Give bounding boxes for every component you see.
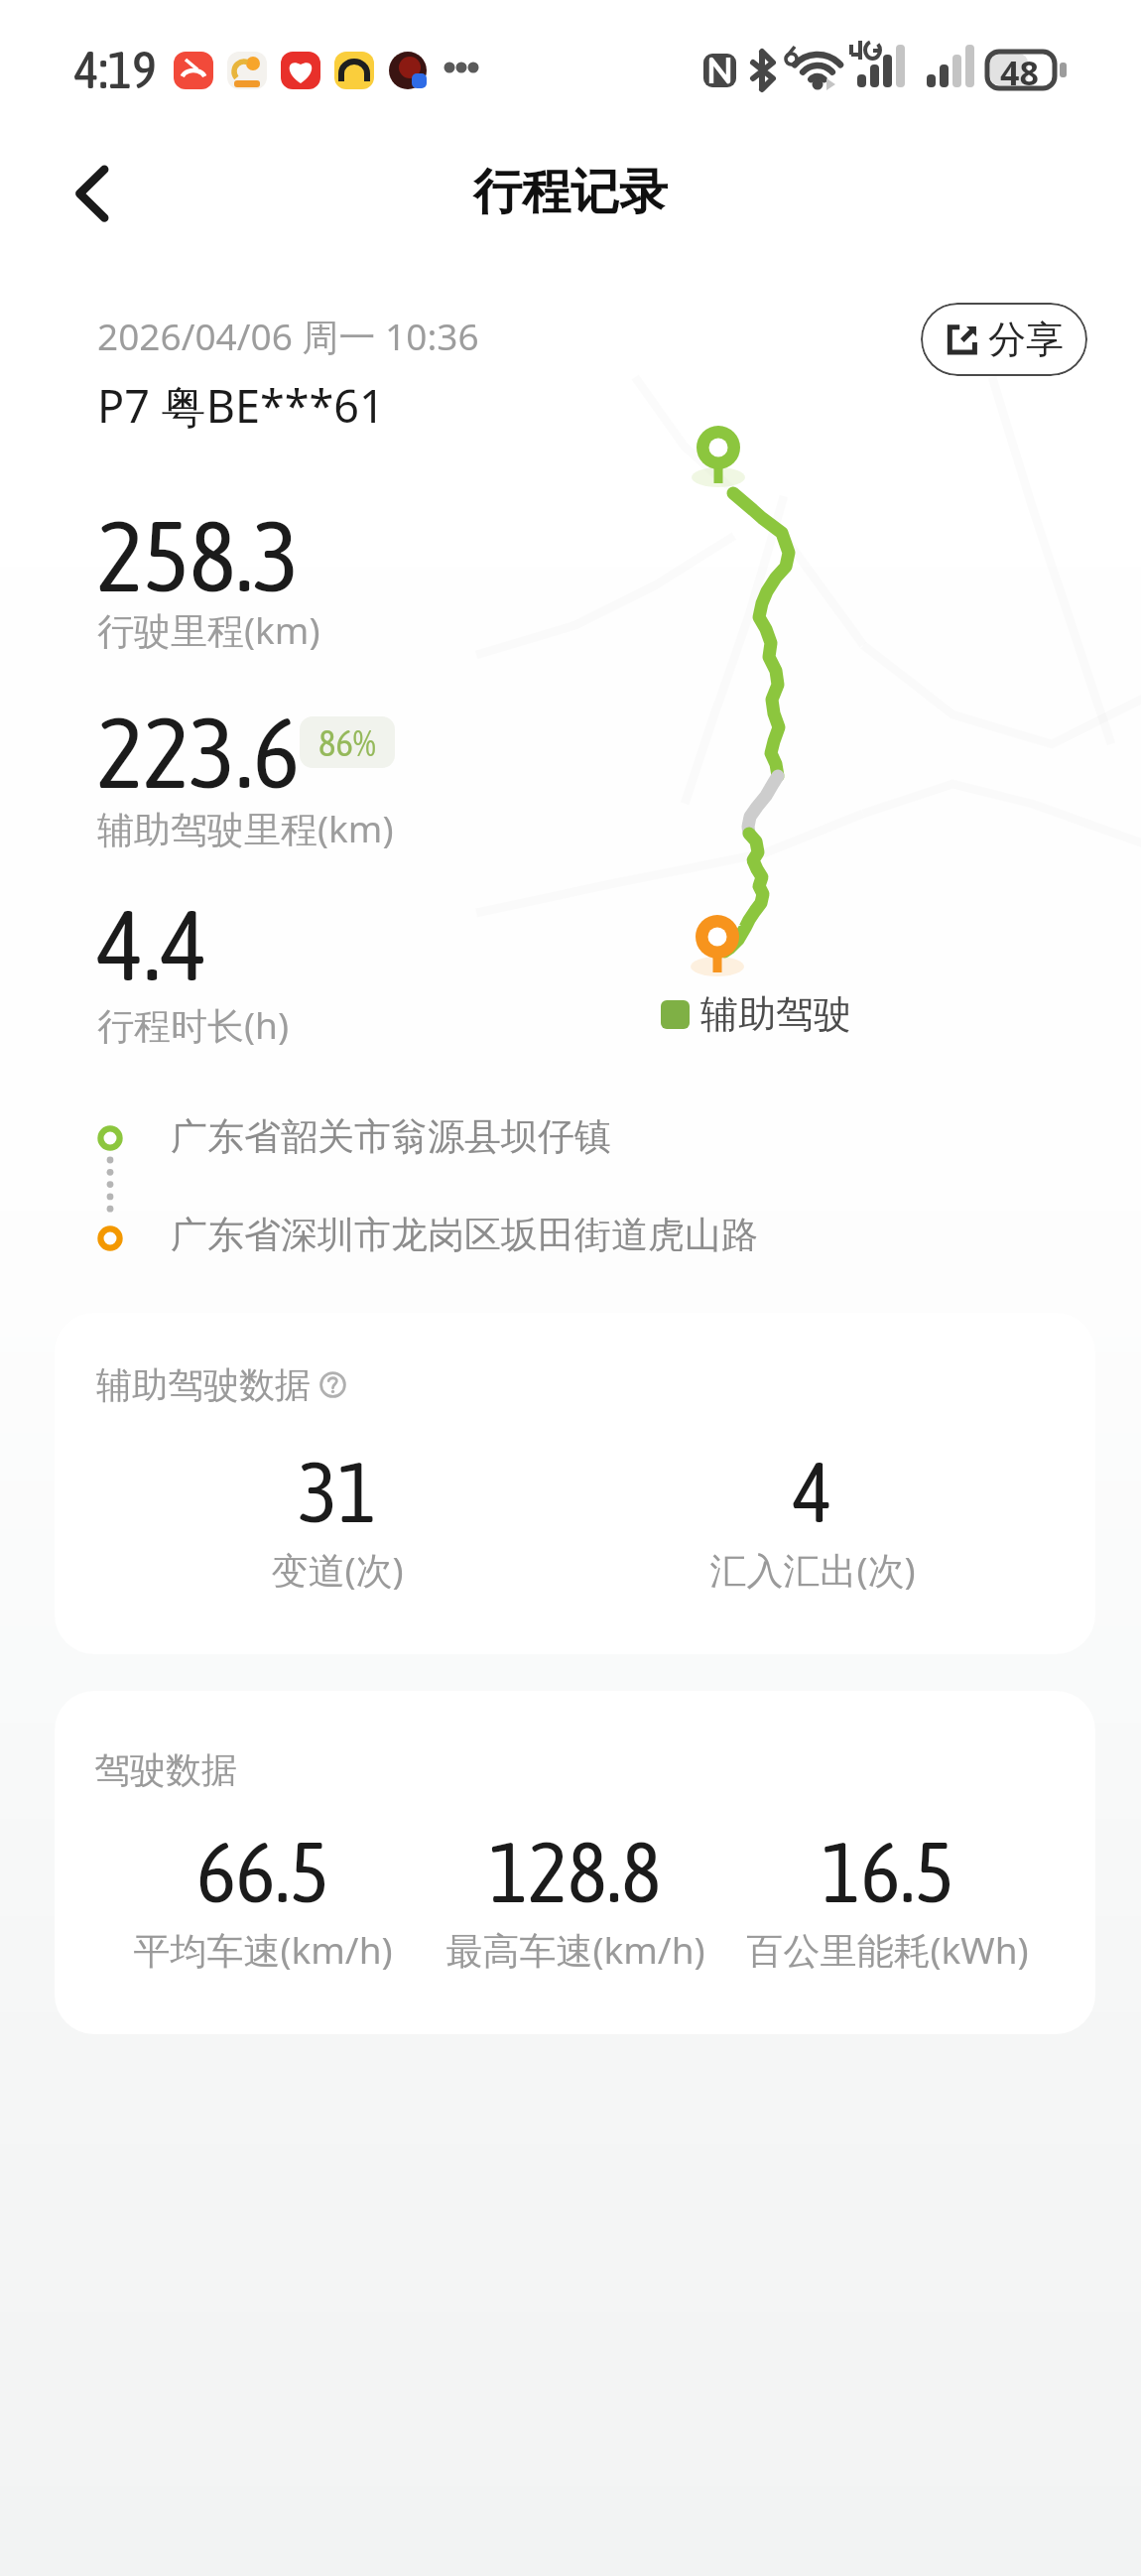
- button[interactable]: 查看行程地图 Trip map: [466, 377, 1111, 972]
- staticText: 广东省深圳市龙岗区坂田街道虎山路: [171, 1212, 758, 1258]
- staticText: 4:19: [74, 40, 157, 99]
- button[interactable]: 行程起终点: [79, 1092, 1072, 1290]
- button[interactable]: 分享 Share: [921, 303, 1087, 376]
- staticText: 223.6: [97, 697, 300, 809]
- staticText: 16.5: [822, 1825, 954, 1920]
- staticText: 4.4: [97, 889, 207, 1001]
- staticText: 汇入汇出(次): [709, 1544, 916, 1595]
- staticText: 行程时长(h): [97, 999, 290, 1050]
- staticText: 百公里能耗(kWh): [746, 1924, 1029, 1975]
- staticText: 128.8: [489, 1825, 661, 1920]
- staticText: 辅助驾驶里程(km): [97, 803, 394, 853]
- staticText: 变道(次): [271, 1544, 404, 1595]
- staticText: 66.5: [196, 1825, 329, 1920]
- staticText: 86%: [318, 721, 376, 763]
- staticText: 48: [1000, 50, 1039, 95]
- staticText: 驾驶数据: [94, 1747, 237, 1792]
- staticText: 广东省韶关市翁源县坝仔镇: [171, 1113, 611, 1160]
- staticText: 分享: [988, 316, 1064, 363]
- staticText: 行程记录: [473, 162, 668, 223]
- staticText: 行驶里程(km): [97, 604, 320, 655]
- button[interactable]: 辅助驾驶数据: [55, 1313, 1095, 1654]
- staticText: 最高车速(km/h): [445, 1924, 705, 1975]
- staticText: 辅助驾驶数据: [96, 1362, 311, 1407]
- staticText: 平均车速(km/h): [133, 1924, 393, 1975]
- staticText: 31: [299, 1445, 377, 1540]
- staticText: P7 粤BE***61: [97, 375, 385, 436]
- staticText: 4: [793, 1445, 832, 1540]
- button[interactable]: 驾驶数据: [55, 1691, 1095, 2034]
- staticText: 辅助驾驶: [700, 990, 851, 1038]
- button[interactable]: Back: [50, 144, 141, 235]
- staticText: 2026/04/06 周一 10:36: [97, 311, 479, 361]
- staticText: 258.3: [97, 500, 300, 612]
